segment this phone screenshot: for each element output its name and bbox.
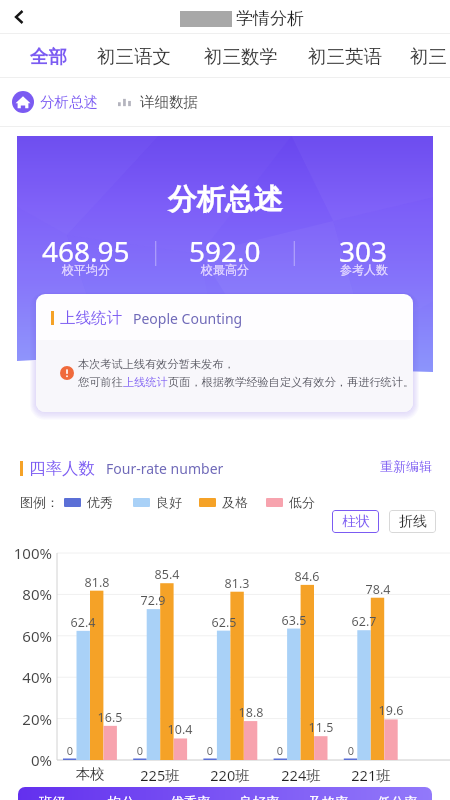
button[interactable]: 初三英语 <box>308 45 382 68</box>
staticText: 初三英语 <box>308 45 382 68</box>
staticText: 优秀 <box>87 494 113 510</box>
staticText: 初三数学 <box>204 45 278 68</box>
staticText: 303 <box>339 232 388 270</box>
staticText: 折线 <box>399 513 427 531</box>
staticText: 全部 <box>30 45 67 68</box>
staticText: 80% <box>0 584 52 604</box>
staticText: 本校 <box>60 765 120 783</box>
staticText: 校最高分 <box>201 262 249 277</box>
staticText: 上线统计 <box>123 375 168 389</box>
staticText: 0 <box>120 743 160 758</box>
staticText: 上线统计 <box>60 308 122 328</box>
staticText: 72.9 <box>133 592 173 609</box>
staticText: 柱状 <box>342 513 370 531</box>
staticText: 63.5 <box>274 612 314 629</box>
staticText: 81.3 <box>217 575 257 592</box>
staticText: 均分 <box>87 794 156 800</box>
staticText: 20% <box>0 709 52 729</box>
staticText: 592.0 <box>189 232 261 270</box>
staticText: 分析总述 <box>0 182 450 218</box>
staticText: 良好率 <box>225 794 294 800</box>
button[interactable]: 详细数据 <box>118 78 198 126</box>
staticText: 62.4 <box>63 614 103 631</box>
staticText: 学情分析 <box>236 8 304 29</box>
staticText: 225班 <box>130 765 190 785</box>
staticText: 100% <box>0 543 52 563</box>
staticText: 81.8 <box>77 574 117 591</box>
staticText: 及格 <box>222 494 248 510</box>
staticText: 19.6 <box>371 702 411 719</box>
button[interactable]: 折线 <box>389 510 436 533</box>
staticText: 您可前往 <box>78 375 123 389</box>
staticText: 低分 <box>289 494 315 510</box>
staticText: 78.4 <box>358 581 398 598</box>
button[interactable]: 初三 <box>410 45 447 68</box>
staticText: 16.5 <box>90 709 130 726</box>
button[interactable]: 柱状 <box>332 510 379 533</box>
staticText: 良好 <box>156 494 182 510</box>
staticText: 62.5 <box>204 614 244 631</box>
staticText: 18.8 <box>231 704 271 721</box>
button[interactable]: Back <box>5 3 33 31</box>
staticText: 220班 <box>200 765 260 785</box>
staticText: Four-rate number <box>106 459 224 478</box>
staticText: 0% <box>0 750 52 770</box>
staticText: 0 <box>50 743 90 758</box>
staticText: 85.4 <box>147 566 187 583</box>
staticText: 11.5 <box>301 719 341 736</box>
staticText: 图例： <box>20 494 59 510</box>
staticText: 详细数据 <box>140 93 198 111</box>
staticText: 及格率 <box>294 794 363 800</box>
staticText: 低分率 <box>363 794 432 800</box>
staticText: 40% <box>0 667 52 687</box>
staticText: 四率人数 <box>29 458 95 479</box>
staticText: 224班 <box>271 765 331 785</box>
staticText: People Counting <box>133 309 243 328</box>
staticText: 468.95 <box>42 232 130 270</box>
button[interactable]: 全部 <box>30 45 67 68</box>
staticText: 初三 <box>410 45 447 68</box>
staticText: 62.7 <box>344 613 384 630</box>
staticText: 221班 <box>341 765 401 785</box>
staticText: 0 <box>190 743 230 758</box>
button[interactable]: 初三数学 <box>204 45 278 68</box>
staticText: 60% <box>0 626 52 646</box>
staticText: 优秀率 <box>156 794 225 800</box>
staticText: 页面，根据教学经验自定义有效分，再进行统计。 <box>168 375 413 389</box>
staticText: 重新编辑 <box>380 458 432 474</box>
staticText: 校平均分 <box>62 262 110 277</box>
staticText: 本次考试上线有效分暂未发布， <box>78 357 235 371</box>
button[interactable]: 分析总述 <box>12 78 98 126</box>
staticText: 10.4 <box>160 721 200 738</box>
staticText: 84.6 <box>287 568 327 585</box>
staticText: 0 <box>331 743 371 758</box>
button[interactable]: 重新编辑 <box>380 458 432 474</box>
button[interactable]: 初三语文 <box>97 45 171 68</box>
staticText: 班级 <box>18 794 87 800</box>
staticText: 初三语文 <box>97 45 171 68</box>
staticText: 0 <box>260 743 300 758</box>
staticText: 分析总述 <box>40 93 98 111</box>
staticText: 参考人数 <box>340 262 388 277</box>
